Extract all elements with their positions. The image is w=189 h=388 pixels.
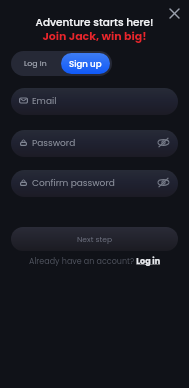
button[interactable]: Email [11, 88, 178, 115]
button[interactable]: Show password [156, 135, 170, 149]
staticText: Already have an account? Log in [29, 256, 161, 267]
button[interactable]: Close [164, 3, 184, 23]
button[interactable]: Password [11, 130, 178, 157]
staticText: Email [32, 95, 57, 108]
button[interactable]: Sign up [61, 53, 110, 74]
staticText: Password [32, 137, 76, 150]
button[interactable]: Confirm password [11, 170, 178, 197]
staticText: Confirm password [32, 177, 115, 190]
staticText: Sign up [69, 58, 102, 70]
staticText: Join Jack, win big! [0, 28, 189, 43]
button[interactable]: Show password [156, 175, 170, 189]
button[interactable]: Next step [11, 227, 178, 251]
staticText: Next step [77, 234, 113, 245]
button[interactable]: Log in [12, 53, 59, 74]
staticText: Adventure starts here! [0, 15, 189, 30]
staticText: Log in [24, 58, 47, 69]
